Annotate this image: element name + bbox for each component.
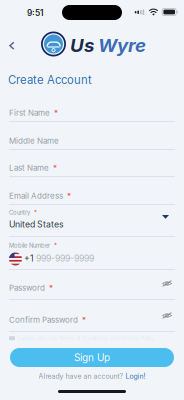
staticText: * xyxy=(45,283,53,293)
staticText: * xyxy=(49,163,57,173)
staticText: Sign Up xyxy=(74,351,110,364)
button[interactable]: Show password xyxy=(0,0,184,400)
staticText: Middle Name xyxy=(9,136,59,146)
staticText: United States xyxy=(9,219,64,229)
button[interactable]: Show confirm password xyxy=(0,0,184,400)
staticText: 999-999-9999 xyxy=(36,253,94,263)
staticText: 9:51 xyxy=(27,8,43,18)
staticText: Login! xyxy=(125,372,145,380)
staticText: Email Address xyxy=(9,191,63,201)
staticText: Us xyxy=(70,34,94,57)
button[interactable]: Already have an account? xyxy=(0,0,184,400)
staticText: * xyxy=(50,108,58,118)
staticText: * xyxy=(30,209,37,216)
staticText: Last Name xyxy=(9,163,49,173)
staticText: Wyre xyxy=(98,34,146,57)
staticText: Mobile Number xyxy=(9,242,50,249)
staticText: * xyxy=(78,315,86,325)
staticText: Password xyxy=(9,283,45,293)
staticText: Already have an account? xyxy=(38,372,125,380)
button[interactable]: Sign Up xyxy=(0,0,184,400)
button[interactable]: Back xyxy=(0,0,184,400)
staticText: Country xyxy=(9,209,30,216)
staticText: Create Account xyxy=(8,73,92,87)
staticText: +1 xyxy=(24,253,34,263)
staticText: First Name xyxy=(9,108,50,118)
staticText: * xyxy=(63,191,71,201)
staticText: Confirm Password xyxy=(9,315,78,325)
staticText: * xyxy=(50,242,57,249)
